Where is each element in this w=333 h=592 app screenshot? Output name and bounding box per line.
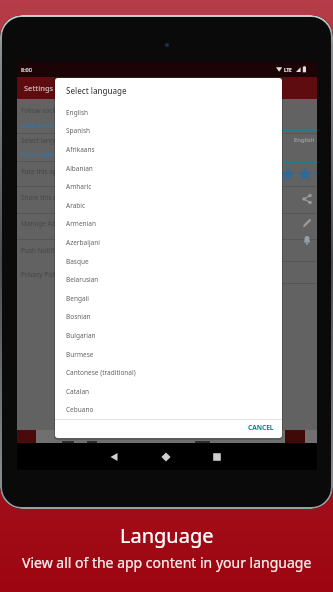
button[interactable]: Bulgarian <box>55 326 282 345</box>
staticText: English <box>66 108 89 117</box>
staticText: Bulgarian <box>66 331 96 340</box>
button[interactable] <box>105 447 123 465</box>
staticText: Auto-translate <box>21 121 65 130</box>
staticText: Basque <box>66 257 89 266</box>
staticText: CANCEL <box>248 423 274 432</box>
staticText: Select language <box>21 136 70 145</box>
button[interactable]: Basque <box>55 252 282 271</box>
button[interactable]: Bengali <box>55 289 282 308</box>
staticText: Belarusian <box>66 275 99 284</box>
button[interactable]: Afrikaans <box>55 140 282 159</box>
staticText: Spanish <box>66 126 91 135</box>
button[interactable] <box>208 447 226 465</box>
staticText: Select language <box>66 85 127 96</box>
staticText: 8:00 <box>21 66 32 73</box>
staticText: Bengali <box>66 294 89 303</box>
button[interactable]: Language <box>120 522 214 549</box>
button[interactable]: Albanian <box>55 159 282 178</box>
staticText: Azerbaijani <box>66 238 100 247</box>
staticText: Follow social media <box>21 106 81 115</box>
button[interactable]: Cantonese (traditional) <box>55 363 282 382</box>
staticText: Share this app <box>21 193 65 202</box>
staticText: Miscellaneous <box>21 150 65 159</box>
staticText: Catalan <box>66 387 90 396</box>
staticText: Burmese <box>66 350 94 359</box>
button[interactable]: Bosnian <box>55 307 282 326</box>
button[interactable]: Amharic <box>55 177 282 196</box>
button[interactable]: Cebuano <box>55 400 282 419</box>
staticText: Arabic <box>66 201 86 210</box>
staticText: Afrikaans <box>66 145 95 154</box>
button[interactable]: Spanish <box>55 121 282 140</box>
staticText: Cebuano <box>66 405 94 414</box>
button[interactable]: Arabic <box>55 196 282 215</box>
staticText: Manage Ad Choices <box>21 219 82 228</box>
staticText: Push Notifications <box>21 246 77 255</box>
staticText: Armenian <box>66 219 96 228</box>
button[interactable]: Armenian <box>55 214 282 233</box>
staticText: Rate this app <box>21 167 61 176</box>
staticText: View all of the app content in your lang… <box>22 553 312 572</box>
staticText: Albanian <box>66 164 93 173</box>
button[interactable]: Azerbaijani <box>55 233 282 252</box>
button[interactable]: English <box>55 103 282 122</box>
staticText: Bosnian <box>66 312 91 321</box>
button[interactable] <box>157 447 175 465</box>
staticText: Cantonese (traditional) <box>66 368 136 377</box>
button[interactable]: CANCEL <box>205 420 274 435</box>
staticText: Settings <box>24 83 54 93</box>
staticText: LTE <box>284 67 292 73</box>
button[interactable]: Burmese <box>55 345 282 364</box>
button[interactable]: Belarusian <box>55 270 282 289</box>
staticText: English <box>294 136 315 144</box>
staticText: Privacy Policy <box>21 270 63 279</box>
button[interactable]: Catalan <box>55 382 282 401</box>
staticText: Amharic <box>66 182 92 191</box>
